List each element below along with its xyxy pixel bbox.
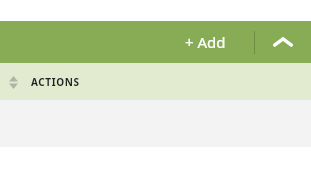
button[interactable]: Sort <box>5 72 21 92</box>
staticText: + Add <box>185 32 226 52</box>
staticText: ACTIONS <box>31 75 80 89</box>
button[interactable]: ACTIONS <box>31 75 80 89</box>
button[interactable]: + Add <box>175 26 236 58</box>
button[interactable]: Collapse <box>255 21 311 63</box>
